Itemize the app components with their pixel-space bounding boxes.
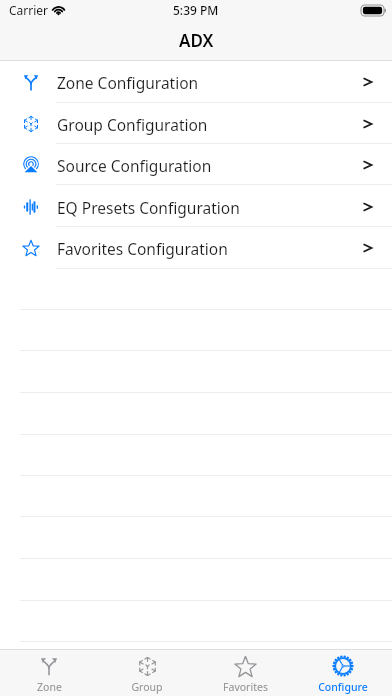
- button[interactable]: Favorites Configuration: [0, 227, 392, 269]
- staticText: Group: [131, 680, 163, 694]
- button[interactable]: Favorites: [196, 650, 294, 694]
- staticText: 5:39 PM: [173, 2, 219, 18]
- button[interactable]: Group Configuration: [0, 103, 392, 145]
- staticText: EQ Presets Configuration: [57, 197, 240, 218]
- button[interactable]: Zone: [0, 650, 98, 694]
- staticText: Favorites: [223, 680, 268, 694]
- staticText: Group Configuration: [57, 114, 208, 135]
- staticText: Source Configuration: [57, 155, 212, 176]
- button[interactable]: Group: [98, 650, 196, 694]
- staticText: Zone: [37, 680, 62, 694]
- button[interactable]: Configure: [294, 650, 392, 694]
- button[interactable]: Source Configuration: [0, 144, 392, 186]
- staticText: ADX: [179, 29, 214, 52]
- staticText: Favorites Configuration: [57, 238, 228, 259]
- staticText: Configure: [318, 680, 368, 694]
- staticText: Zone Configuration: [57, 72, 199, 93]
- staticText: Carrier: [9, 2, 49, 18]
- button[interactable]: Zone Configuration: [0, 61, 392, 103]
- button[interactable]: EQ Presets Configuration: [0, 186, 392, 228]
